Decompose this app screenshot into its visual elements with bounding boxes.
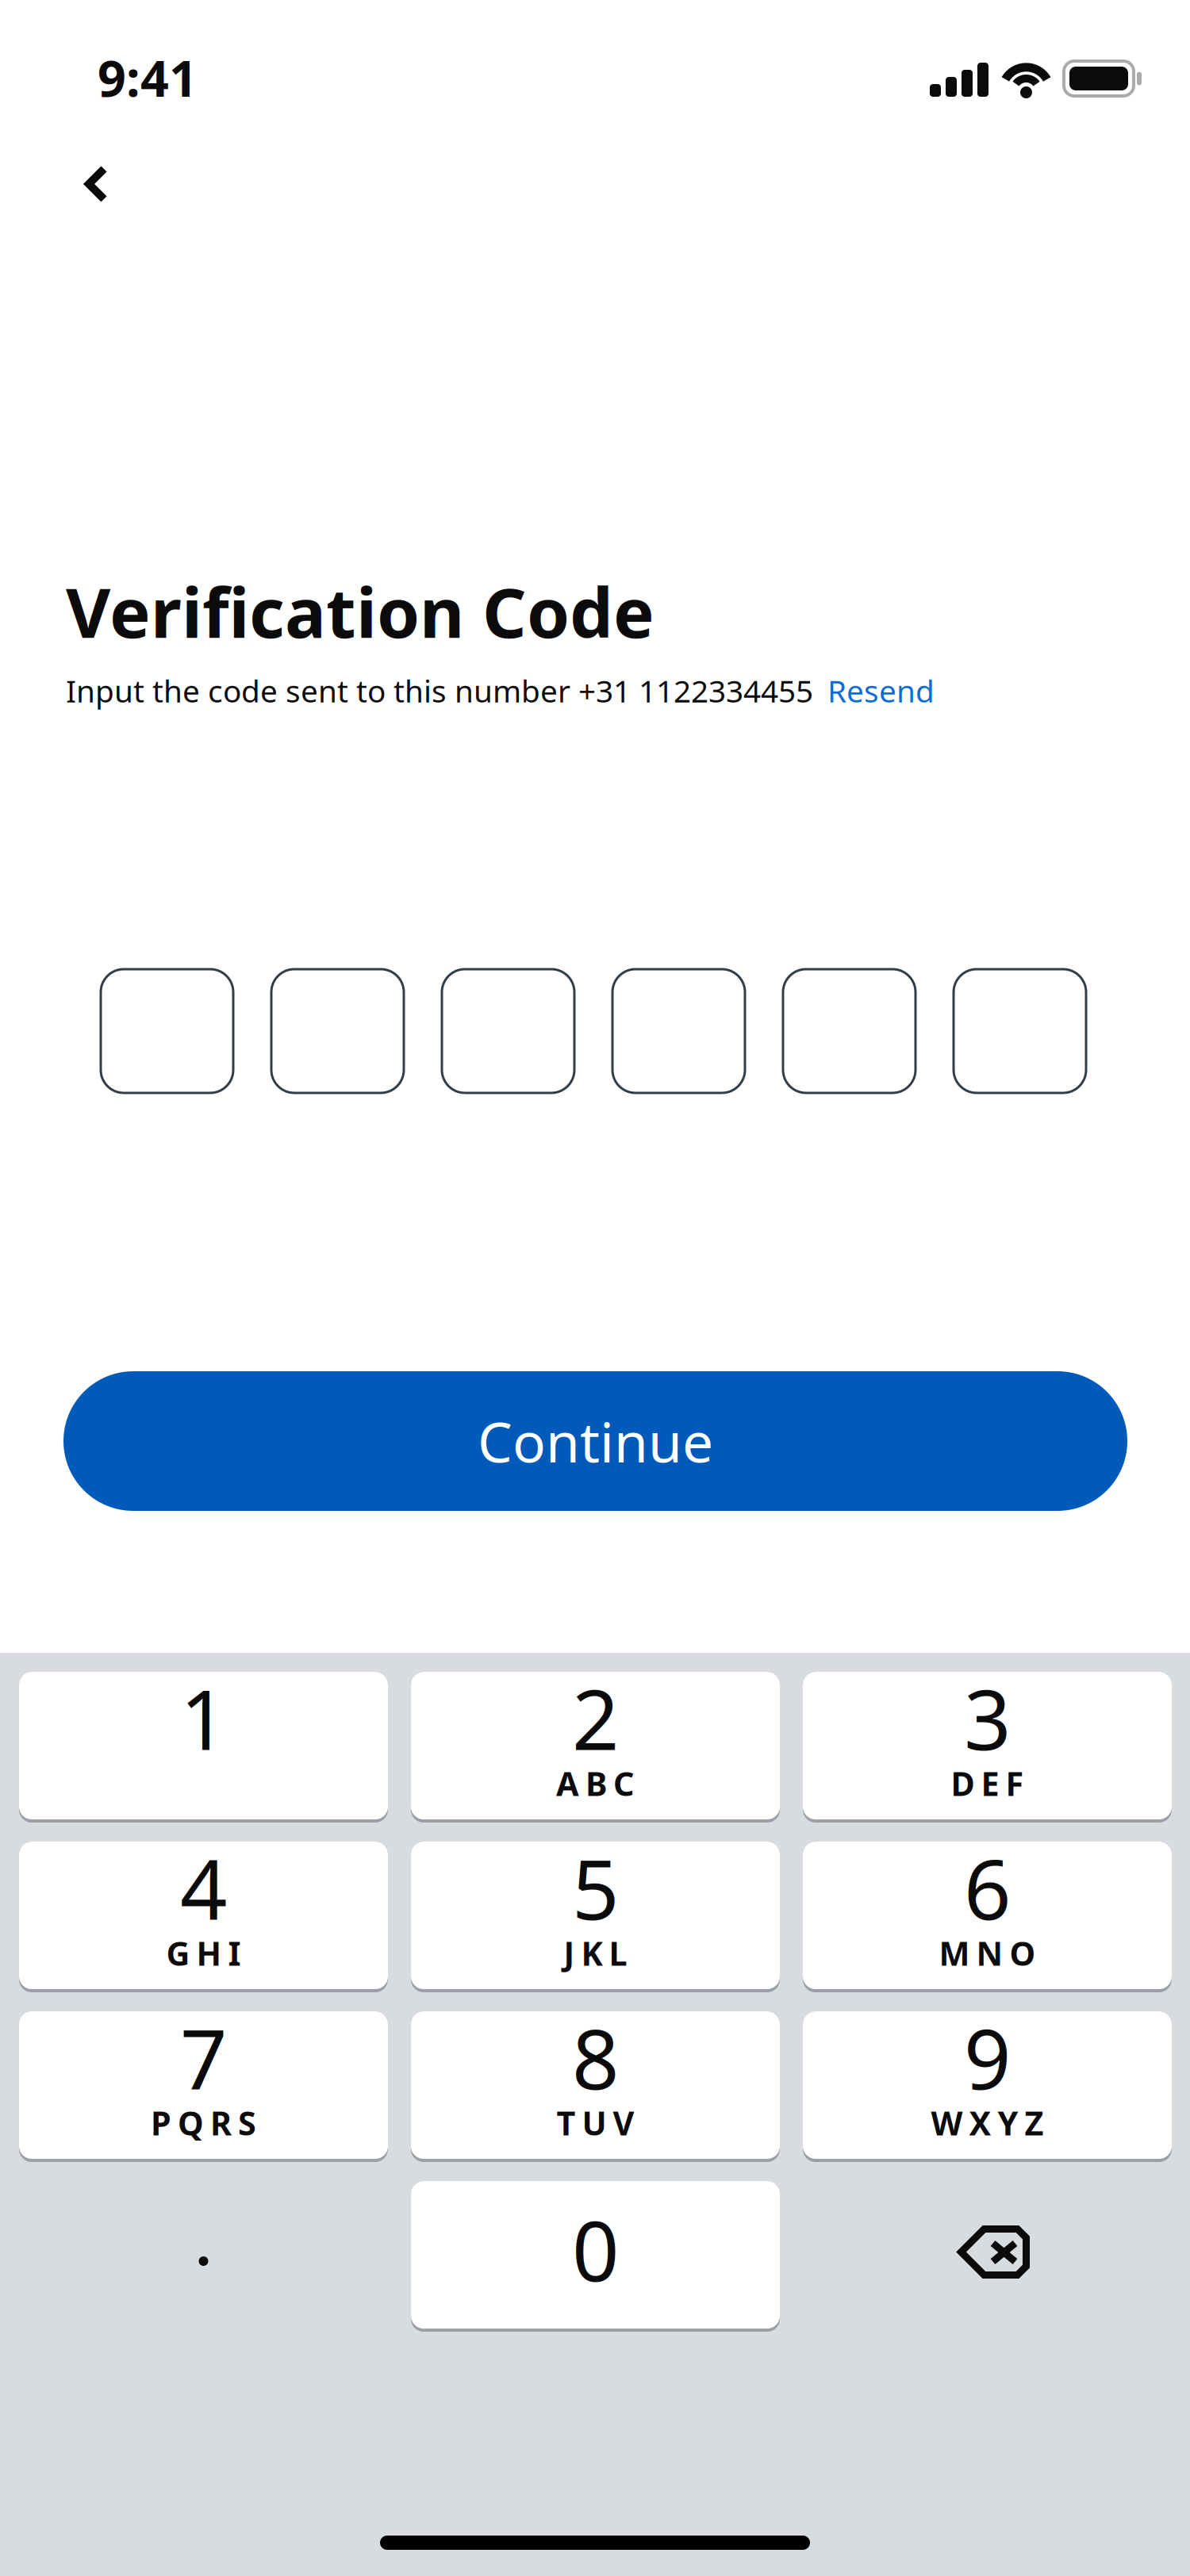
button[interactable]: Resend [813,670,946,711]
staticText: 2 [572,1663,619,1773]
staticText: Continue [478,1405,713,1478]
button[interactable]: 0 [411,2181,780,2332]
staticText: JKL [564,1931,627,1975]
button[interactable]: 7 [19,2011,388,2162]
staticText: 9:41 [98,44,198,110]
button[interactable]: Code digit 2 [271,969,404,1093]
button[interactable]: 8 [411,2011,780,2162]
button[interactable]: Decimal point [19,2181,388,2332]
button[interactable]: 1 [19,1672,388,1823]
staticText: ABC [556,1761,635,1805]
staticText: GHI [166,1931,241,1975]
staticText: TUV [557,2101,634,2144]
button[interactable]: Code digit 4 [612,969,745,1093]
button[interactable]: Back [56,136,138,233]
staticText: 8 [572,2003,619,2112]
staticText: Verification Code [66,565,654,657]
staticText: 7 [180,2003,227,2112]
button[interactable]: Continue [63,1371,1127,1511]
button[interactable]: Delete [803,2181,1172,2332]
staticText: PQRS [151,2101,256,2144]
staticText: 9 [964,2003,1011,2112]
button[interactable]: 4 [19,1842,388,1992]
staticText: 6 [964,1833,1011,1942]
staticText: DEF [951,1761,1024,1805]
staticText: Resend [827,670,935,711]
staticText: 3 [964,1663,1011,1773]
button[interactable]: 6 [803,1842,1172,1992]
staticText: 5 [572,1833,619,1942]
button[interactable]: Code digit 1 [101,969,233,1093]
button[interactable]: 5 [411,1842,780,1992]
staticText: Input the code sent to this number +31 1… [66,670,813,711]
button[interactable]: Code digit 5 [783,969,916,1093]
button[interactable]: Code digit 6 [954,969,1086,1093]
button[interactable]: 2 [411,1672,780,1823]
staticText: 4 [180,1833,227,1942]
staticText: WXYZ [931,2101,1044,2144]
button[interactable]: 3 [803,1672,1172,1823]
staticText: 0 [572,2195,619,2304]
button[interactable]: 9 [803,2011,1172,2162]
staticText: 1 [180,1663,227,1773]
button[interactable]: Code digit 3 [442,969,574,1093]
staticText: MNO [939,1931,1036,1975]
